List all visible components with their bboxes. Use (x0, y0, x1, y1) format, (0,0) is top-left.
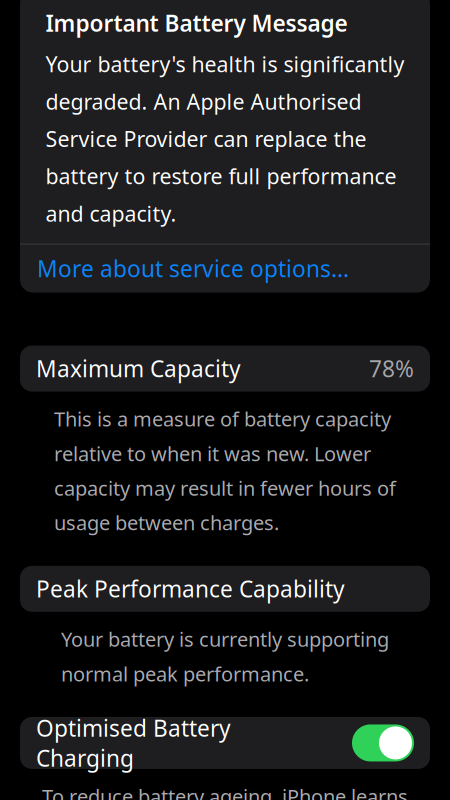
staticText: Important Battery Message (45, 8, 347, 38)
staticText: Your battery's health is significantly d… (45, 50, 404, 228)
staticText: This is a measure of battery capacity re… (54, 406, 396, 536)
staticText: Maximum Capacity (36, 353, 241, 384)
staticText: To reduce battery ageing, iPhone learns … (42, 783, 408, 800)
staticText: Peak Performance Capability (36, 574, 345, 604)
staticText: 78% (369, 353, 414, 384)
button[interactable]: Optimised Battery Charging (352, 724, 414, 761)
button[interactable]: More about service options... (20, 245, 430, 293)
staticText: Optimised Battery Charging (36, 713, 231, 773)
staticText: More about service options... (37, 253, 349, 284)
staticText: Your battery is currently supporting nor… (61, 626, 389, 687)
